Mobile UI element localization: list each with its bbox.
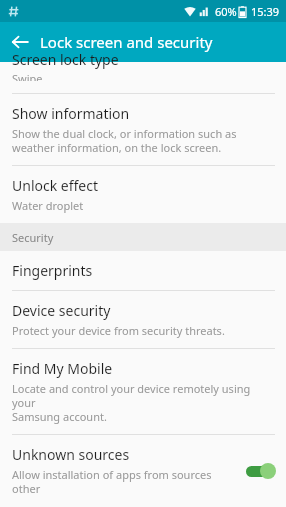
staticText: 15:39	[251, 4, 280, 19]
button[interactable]: Fingerprints	[0, 251, 286, 290]
button[interactable]: Back	[0, 22, 40, 62]
staticText: Find My Mobile	[12, 359, 113, 378]
staticText: Fingerprints	[12, 261, 93, 280]
button[interactable]: Find My Mobile	[0, 349, 286, 434]
staticText: Show the dual clock, or information such…	[12, 126, 237, 155]
button[interactable]: Screen lock type	[0, 62, 286, 93]
staticText: Unknown sources	[12, 445, 130, 464]
staticText: Allow installation of apps from sources …	[12, 467, 240, 497]
button[interactable]: Device security	[0, 291, 286, 348]
button[interactable]: Unknown sources toggle	[246, 461, 276, 481]
staticText: Device security	[12, 301, 111, 320]
staticText: Locate and control your device remotely …	[12, 381, 274, 424]
staticText: Security	[12, 230, 54, 245]
staticText: Show information	[12, 104, 130, 123]
button[interactable]: Unknown sources	[0, 435, 286, 507]
staticText: Water droplet	[12, 198, 84, 213]
staticText: Lock screen and security	[40, 32, 213, 52]
button[interactable]: Show information	[0, 94, 286, 165]
button[interactable]: Unlock effect	[0, 166, 286, 223]
staticText: Screen lock type	[12, 50, 119, 69]
staticText: Unlock effect	[12, 176, 99, 195]
staticText: 60%	[215, 4, 237, 19]
staticText: Swipe	[12, 71, 43, 81]
staticText: Protect your device from security threat…	[12, 323, 225, 338]
